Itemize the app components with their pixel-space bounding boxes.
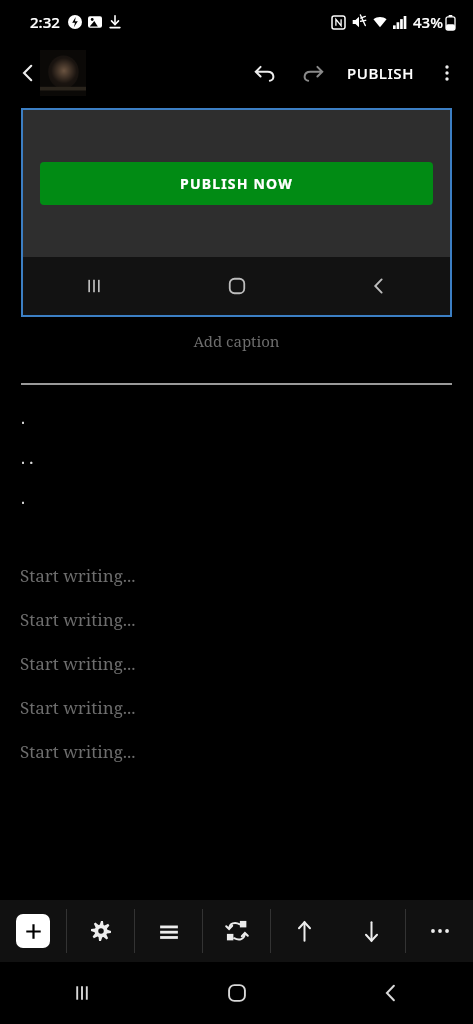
button[interactable]: More options [425, 51, 469, 95]
button[interactable]: Settings [67, 900, 134, 962]
staticText: 43% [413, 12, 443, 32]
button[interactable]: Start writing... [0, 553, 473, 597]
button[interactable]: PUBLISH [337, 49, 425, 97]
button[interactable]: Recents [58, 969, 106, 1017]
staticText: PUBLISH NOW [180, 174, 293, 193]
staticText: . . [21, 447, 34, 465]
staticText: PUBLISH [347, 63, 415, 83]
staticText: Add caption [0, 331, 473, 351]
staticText: . [21, 487, 26, 505]
button[interactable]: Start writing... [0, 641, 473, 685]
staticText: Start writing... [20, 696, 136, 719]
staticText: 2:32 [30, 12, 60, 32]
staticText: Start writing... [20, 652, 136, 675]
button[interactable]: Start writing... [0, 685, 473, 729]
staticText: Start writing... [20, 740, 136, 763]
button[interactable]: Back [367, 969, 415, 1017]
button[interactable]: Move up [271, 900, 338, 962]
staticText: Start writing... [20, 564, 136, 587]
button[interactable]: Start writing... [0, 597, 473, 641]
button[interactable]: Align [135, 900, 202, 962]
button[interactable]: Post thumbnail [40, 50, 86, 96]
button[interactable]: Back [10, 55, 46, 91]
staticText: . [21, 407, 26, 425]
button[interactable]: Start writing... [0, 729, 473, 773]
button[interactable]: Add block [0, 900, 66, 962]
button[interactable]: Redo [289, 49, 337, 97]
button[interactable]: PUBLISH NOW [23, 110, 450, 315]
staticText: Start writing... [20, 608, 136, 631]
button[interactable]: More [406, 900, 473, 962]
button[interactable]: Move down [338, 900, 405, 962]
button[interactable]: Home [213, 969, 261, 1017]
button[interactable]: Undo [241, 49, 289, 97]
button[interactable]: Replace [203, 900, 270, 962]
